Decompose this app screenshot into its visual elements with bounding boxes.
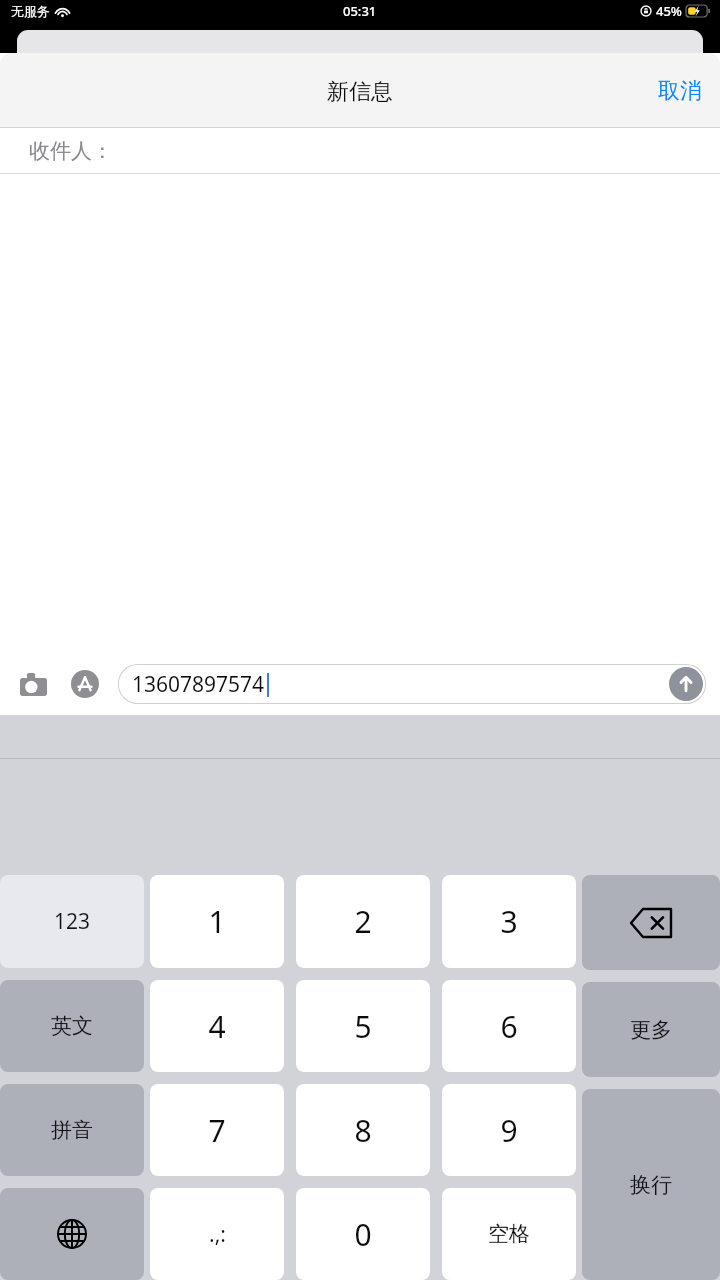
button[interactable]: 空格 xyxy=(442,1188,576,1280)
button[interactable]: Camera xyxy=(14,665,52,703)
staticText: 13607897574 xyxy=(132,670,265,699)
staticText: 0 xyxy=(354,1214,372,1255)
staticText: 05:31 xyxy=(343,2,377,20)
staticText: .,: xyxy=(209,1220,226,1249)
button[interactable]: App Store xyxy=(66,665,104,703)
button[interactable]: 1 xyxy=(150,875,284,968)
button[interactable]: 4 xyxy=(150,980,284,1072)
button[interactable]: 英文 xyxy=(0,980,144,1072)
button[interactable]: 换行 xyxy=(582,1089,720,1280)
staticText: 收件人： xyxy=(29,138,113,164)
button[interactable]: 取消 xyxy=(640,67,720,115)
staticText: 123 xyxy=(54,907,91,936)
staticText: 无服务 xyxy=(11,3,50,19)
staticText: 45% xyxy=(656,2,682,20)
button[interactable]: 2 xyxy=(296,875,430,968)
staticText: 6 xyxy=(500,1006,518,1047)
button[interactable]: 9 xyxy=(442,1084,576,1176)
button[interactable]: 更多 xyxy=(582,982,720,1077)
button[interactable]: 0 xyxy=(296,1188,430,1280)
button[interactable]: 6 xyxy=(442,980,576,1072)
button[interactable]: 8 xyxy=(296,1084,430,1176)
staticText: 8 xyxy=(354,1110,372,1151)
staticText: 空格 xyxy=(488,1221,530,1247)
staticText: 新信息 xyxy=(327,78,393,106)
staticText: 英文 xyxy=(51,1013,93,1039)
button[interactable]: 3 xyxy=(442,875,576,968)
button[interactable]: 5 xyxy=(296,980,430,1072)
staticText: 5 xyxy=(354,1006,372,1047)
button[interactable]: 拼音 xyxy=(0,1084,144,1176)
staticText: 更多 xyxy=(630,1017,672,1043)
staticText: 1 xyxy=(208,901,226,942)
button[interactable]: 13607897574 xyxy=(118,664,706,704)
staticText: 4 xyxy=(208,1006,226,1047)
button[interactable]: Send xyxy=(669,667,703,701)
staticText: 2 xyxy=(354,901,372,942)
staticText: 换行 xyxy=(630,1172,672,1198)
button[interactable]: Switch keyboard xyxy=(0,1188,144,1280)
button[interactable]: Backspace xyxy=(582,875,720,970)
staticText: 3 xyxy=(500,901,518,942)
button[interactable]: 7 xyxy=(150,1084,284,1176)
staticText: 9 xyxy=(500,1110,518,1151)
staticText: 拼音 xyxy=(51,1117,93,1143)
button[interactable]: 收件人： xyxy=(0,128,720,174)
staticText: 取消 xyxy=(658,77,702,105)
button[interactable]: .,: xyxy=(150,1188,284,1280)
button[interactable]: 123 xyxy=(0,875,144,968)
staticText: 7 xyxy=(208,1110,226,1151)
